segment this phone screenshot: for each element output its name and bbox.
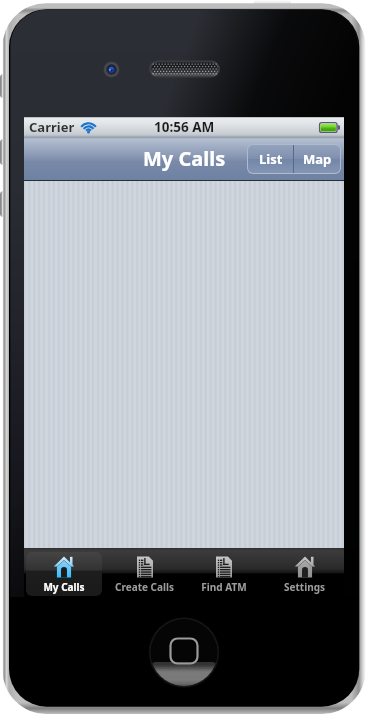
button[interactable]: Map (294, 145, 340, 173)
staticText: Find ATM (201, 580, 247, 594)
button[interactable]: Find ATM (186, 552, 262, 596)
button[interactable]: Create Calls (106, 552, 182, 596)
staticText: Map (303, 150, 332, 168)
button[interactable]: Settings (266, 552, 342, 596)
button[interactable]: List (248, 145, 293, 173)
staticText: Create Calls (115, 580, 174, 594)
staticText: Carrier (29, 118, 75, 136)
staticText: My Calls (143, 145, 226, 172)
staticText: List (259, 150, 283, 168)
button[interactable]: My Calls (26, 552, 102, 596)
staticText: My Calls (43, 580, 85, 594)
staticText: Settings (284, 580, 325, 594)
staticText: 10:56 AM (154, 118, 215, 136)
